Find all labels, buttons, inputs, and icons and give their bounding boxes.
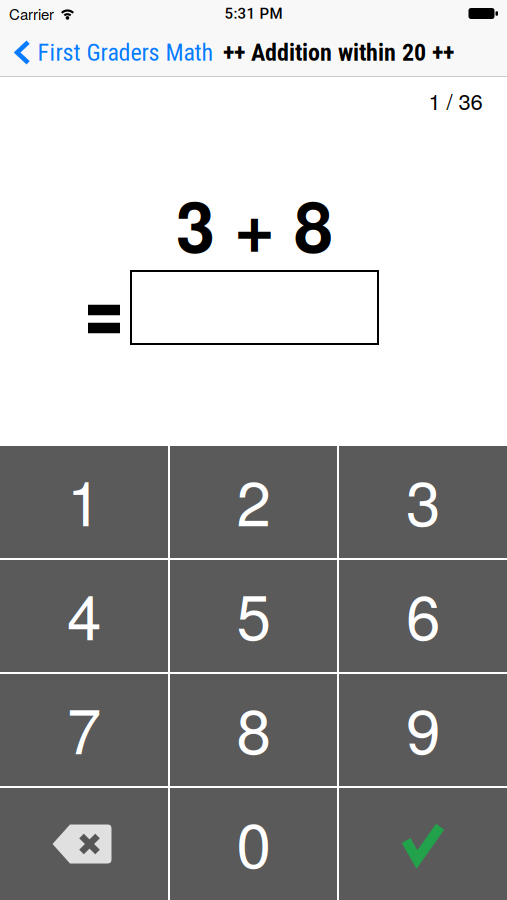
staticText: 6	[406, 569, 440, 658]
button[interactable]: Delete	[0, 788, 168, 900]
staticText: ++ Addition within 20 ++	[223, 38, 454, 66]
button[interactable]: 1	[0, 446, 168, 558]
staticText: 3 + 8	[176, 174, 333, 274]
staticText: First Graders Math	[37, 38, 213, 66]
staticText: 5:31 PM	[224, 5, 282, 22]
staticText: Carrier	[9, 3, 54, 24]
button[interactable]: Submit answer	[339, 788, 507, 900]
button[interactable]: 4	[0, 560, 168, 672]
button[interactable]: 3	[339, 446, 507, 558]
staticText: 1	[67, 455, 101, 544]
button[interactable]: 9	[339, 674, 507, 786]
staticText: 5	[236, 569, 270, 658]
staticText: 8	[236, 683, 270, 772]
button[interactable]: 7	[0, 674, 168, 786]
button[interactable]: 0	[170, 788, 337, 900]
button[interactable]: 5	[170, 560, 337, 672]
button[interactable]: First Graders Math	[14, 38, 213, 66]
staticText: 3	[406, 455, 440, 544]
button[interactable]: 8	[170, 674, 337, 786]
button[interactable]: 6	[339, 560, 507, 672]
staticText: 1 / 36	[428, 85, 482, 116]
button[interactable]: 2	[170, 446, 337, 558]
staticText: 9	[406, 683, 440, 772]
staticText: 0	[236, 797, 270, 886]
staticText: 7	[67, 683, 101, 772]
staticText: 2	[236, 455, 270, 544]
staticText: 4	[67, 569, 101, 658]
